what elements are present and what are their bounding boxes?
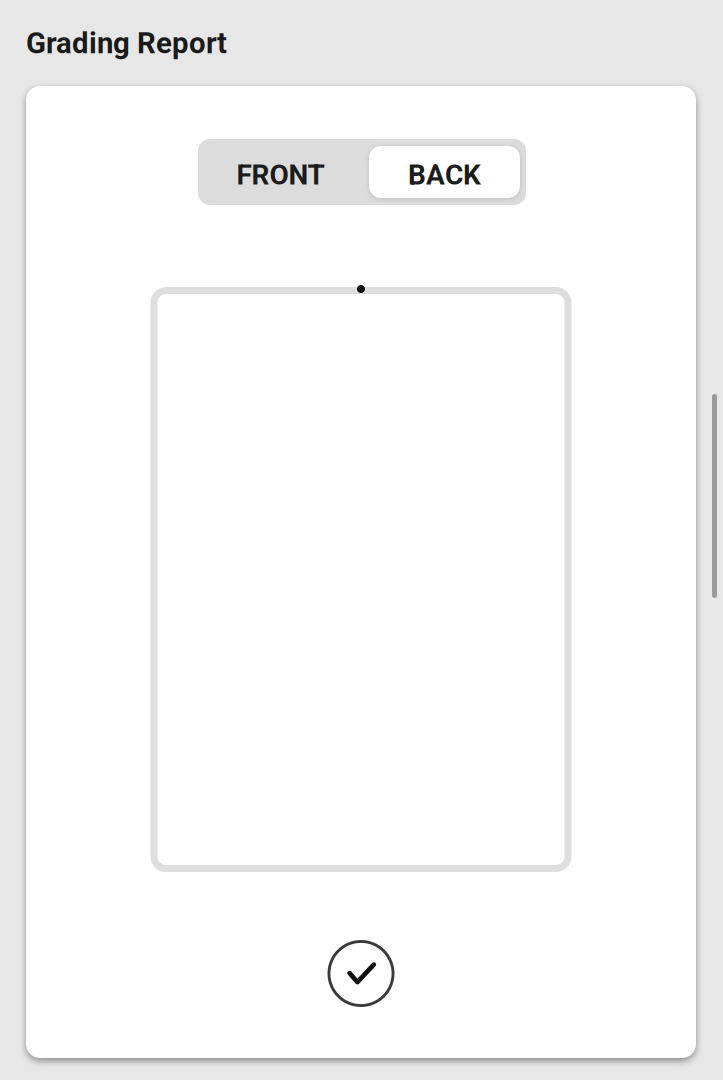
- button[interactable]: BACK: [363, 139, 526, 205]
- staticText: FRONT: [236, 159, 324, 191]
- button[interactable]: FRONT: [198, 139, 363, 205]
- staticText: Grading Report: [26, 26, 227, 60]
- button[interactable]: Confirm: [327, 940, 394, 1007]
- staticText: BACK: [408, 159, 481, 191]
